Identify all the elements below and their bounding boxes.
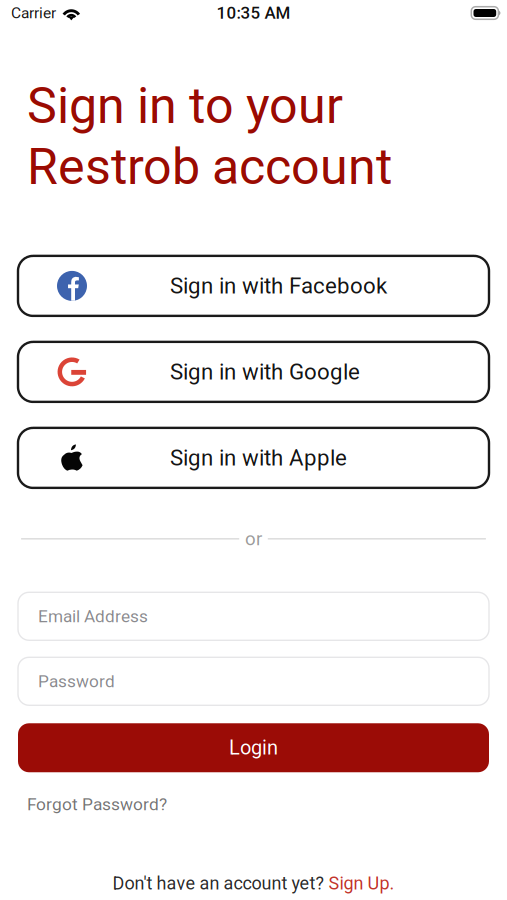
button[interactable]: Sign in with Google [18, 342, 489, 402]
staticText: Sign in with Facebook [170, 273, 387, 299]
button[interactable]: Sign in with Apple [18, 428, 489, 488]
staticText: Forgot Password? [27, 794, 167, 815]
staticText: Don't have an account yet? [112, 873, 328, 894]
button[interactable]: Login [18, 723, 489, 772]
staticText: Restrob account [27, 137, 392, 196]
staticText: 10:35 AM [216, 3, 290, 23]
staticText: Email Address [38, 606, 148, 626]
button[interactable]: Sign in with Facebook [18, 256, 489, 316]
staticText: or [245, 528, 262, 550]
button[interactable]: Email Address [18, 592, 489, 640]
staticText: Login [229, 736, 278, 759]
button[interactable]: Forgot Password? [0, 772, 507, 815]
button[interactable]: Sign Up. [328, 873, 394, 894]
staticText: Carrier [11, 4, 56, 22]
staticText: Sign in to your [27, 76, 343, 135]
staticText: Sign Up. [328, 873, 394, 894]
button[interactable]: Password [18, 657, 489, 705]
staticText: Sign in with Google [170, 359, 360, 385]
staticText: Password [38, 671, 115, 691]
staticText: Sign in with Apple [170, 445, 347, 471]
